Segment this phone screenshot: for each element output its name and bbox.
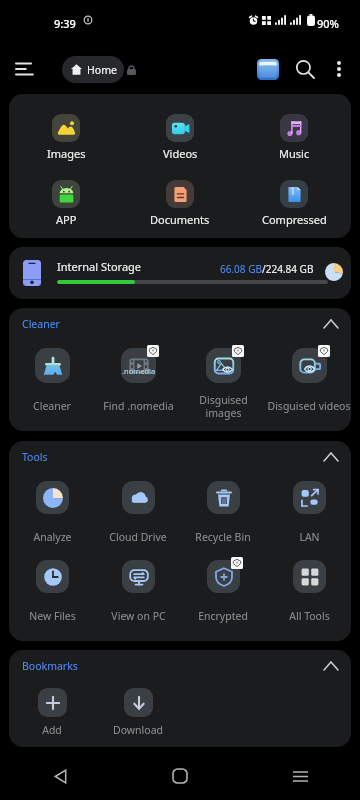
button[interactable]: Recents	[240, 752, 360, 800]
button[interactable]: APP	[9, 172, 123, 227]
staticText: Tools	[22, 450, 48, 464]
staticText: Encrypted	[198, 609, 248, 623]
button[interactable]: .nomedia	[95, 342, 181, 413]
staticText: APP	[56, 212, 77, 227]
button[interactable]: Gallery	[248, 49, 288, 89]
button[interactable]: Download	[95, 682, 181, 737]
staticText: Cleaner	[22, 317, 60, 331]
button[interactable]: Recycle Bin	[180, 475, 266, 544]
button[interactable]: New Files	[9, 554, 95, 623]
button[interactable]: All Tools	[266, 554, 351, 623]
staticText: Images	[47, 146, 86, 161]
staticText: New Files	[29, 609, 76, 623]
staticText: /224.84 GB	[262, 262, 314, 276]
staticText: 9:39	[54, 16, 76, 31]
button[interactable]: LAN	[266, 475, 351, 544]
button[interactable]: View on PC	[95, 554, 181, 623]
button[interactable]: More options	[320, 50, 358, 88]
staticText: 66.08 GB	[220, 262, 262, 276]
staticText: Music	[279, 146, 310, 161]
staticText: Download	[113, 723, 163, 737]
button[interactable]: Cleaner	[9, 308, 351, 340]
button[interactable]: Internal Storage	[9, 247, 351, 299]
button[interactable]: Back	[0, 752, 120, 800]
staticText: Videos	[163, 146, 198, 161]
staticText: LAN	[299, 530, 320, 544]
staticText: Recycle Bin	[195, 530, 251, 544]
staticText: 90%	[317, 16, 339, 31]
button[interactable]: Cleaner	[9, 342, 95, 413]
staticText: Internal Storage	[57, 259, 142, 274]
button[interactable]: Compressed	[237, 172, 351, 227]
staticText: Home	[87, 63, 117, 77]
button[interactable]: Disguised images	[180, 342, 266, 420]
button[interactable]: Music	[237, 106, 351, 161]
staticText: Find .nomedia	[103, 399, 174, 413]
staticText: Documents	[150, 212, 210, 227]
staticText: Disguised videos	[267, 399, 351, 413]
button[interactable]: Menu	[2, 47, 46, 91]
staticText: View on PC	[111, 609, 166, 623]
button[interactable]: Tools	[9, 441, 351, 473]
staticText: Add	[42, 723, 62, 737]
button[interactable]: Home	[120, 752, 240, 800]
staticText: Compressed	[262, 212, 327, 227]
staticText: Disguised images	[199, 393, 248, 420]
staticText: Cloud Drive	[109, 530, 167, 544]
staticText: Cleaner	[33, 399, 71, 413]
button[interactable]: Cloud Drive	[95, 475, 181, 544]
button[interactable]: Documents	[123, 172, 237, 227]
button[interactable]: Add	[9, 682, 95, 737]
button[interactable]: Videos	[123, 106, 237, 161]
button[interactable]: Disguised videos	[266, 342, 351, 413]
staticText: Bookmarks	[22, 659, 78, 673]
button[interactable]: Images	[9, 106, 123, 161]
staticText: All Tools	[289, 609, 330, 623]
staticText: .nomedia	[122, 366, 156, 376]
button[interactable]: Bookmarks	[9, 650, 351, 682]
button[interactable]: Analyze	[9, 475, 95, 544]
button[interactable]: Home	[62, 56, 124, 83]
button[interactable]: Search	[285, 49, 325, 89]
staticText: Analyze	[33, 530, 72, 544]
button[interactable]: Encrypted	[180, 554, 266, 623]
